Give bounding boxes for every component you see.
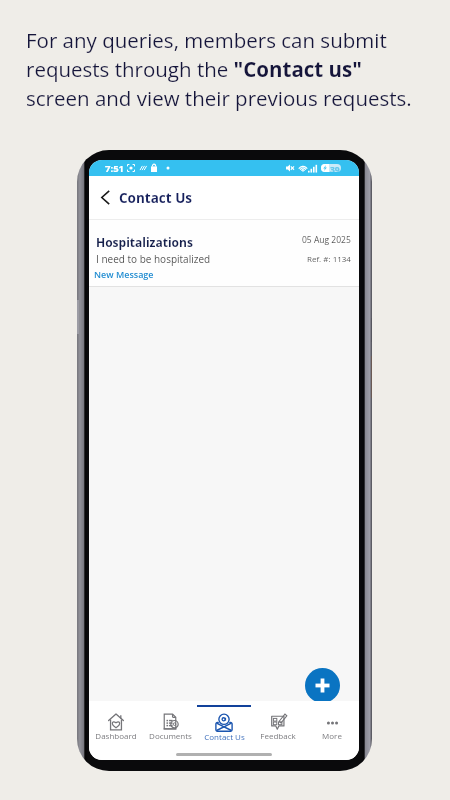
button[interactable]: More bbox=[305, 701, 359, 748]
button[interactable]: Dashboard bbox=[89, 701, 143, 748]
button[interactable]: New request bbox=[305, 668, 340, 703]
staticText: Feedback bbox=[260, 730, 296, 741]
staticText: Documents bbox=[149, 730, 192, 741]
staticText: 39 bbox=[330, 164, 340, 172]
staticText: New Message bbox=[94, 268, 154, 280]
staticText: I need to be hospitalized bbox=[96, 252, 211, 266]
staticText: Contact Us bbox=[204, 731, 245, 742]
staticText: Ref. #: 1134 bbox=[307, 253, 351, 264]
staticText: 05 Aug 2025 bbox=[302, 234, 351, 246]
staticText: Hospitalizations bbox=[96, 234, 193, 250]
staticText: 7:51 bbox=[105, 162, 125, 175]
staticText: Contact Us bbox=[119, 189, 193, 207]
button[interactable]: Documents bbox=[143, 701, 197, 748]
button[interactable]: Back bbox=[94, 186, 116, 208]
staticText: Dashboard bbox=[95, 730, 137, 741]
staticText: More bbox=[322, 730, 342, 741]
button[interactable]: Contact Us bbox=[197, 701, 251, 748]
staticText: For any queries, members can submit requ… bbox=[26, 26, 426, 112]
button[interactable]: Hospitalizations bbox=[89, 219, 359, 287]
button[interactable]: Feedback bbox=[251, 701, 305, 748]
